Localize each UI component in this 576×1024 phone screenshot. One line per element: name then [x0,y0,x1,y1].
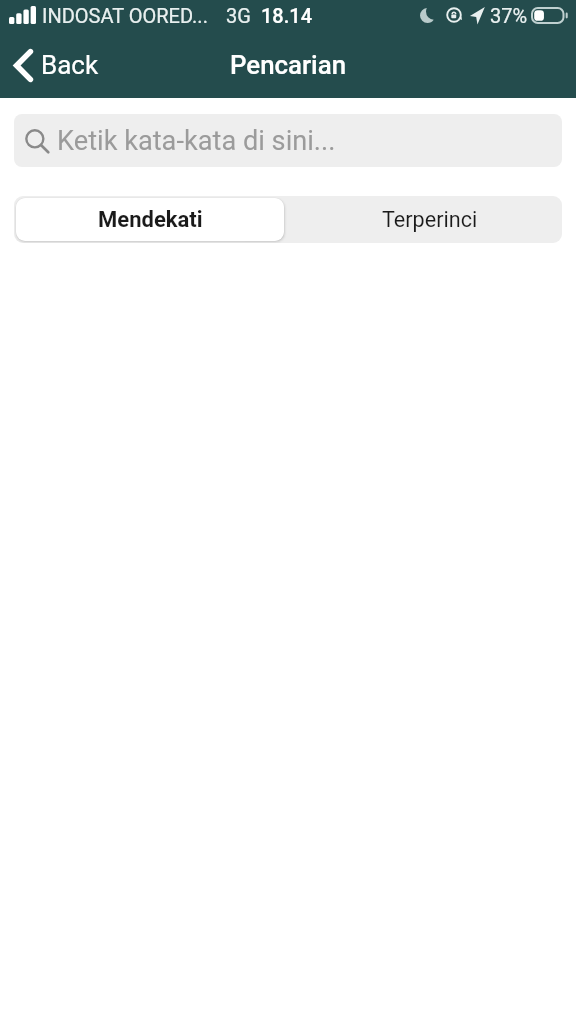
button[interactable]: Mendekati [16,198,284,241]
staticText: 37% [490,4,528,27]
button[interactable]: Ketik kata-kata di sini... [14,114,562,167]
staticText: Back [41,50,99,80]
button[interactable]: Back [0,42,106,88]
staticText: 18.14 [261,4,313,27]
staticText: Terperinci [382,207,478,232]
staticText: 3G [226,4,251,27]
staticText: INDOSAT OORED... [42,4,208,27]
staticText: Pencarian [230,50,346,80]
staticText: Mendekati [98,207,203,233]
button[interactable]: Terperinci [286,196,562,243]
staticText: Ketik kata-kata di sini... [57,125,336,157]
